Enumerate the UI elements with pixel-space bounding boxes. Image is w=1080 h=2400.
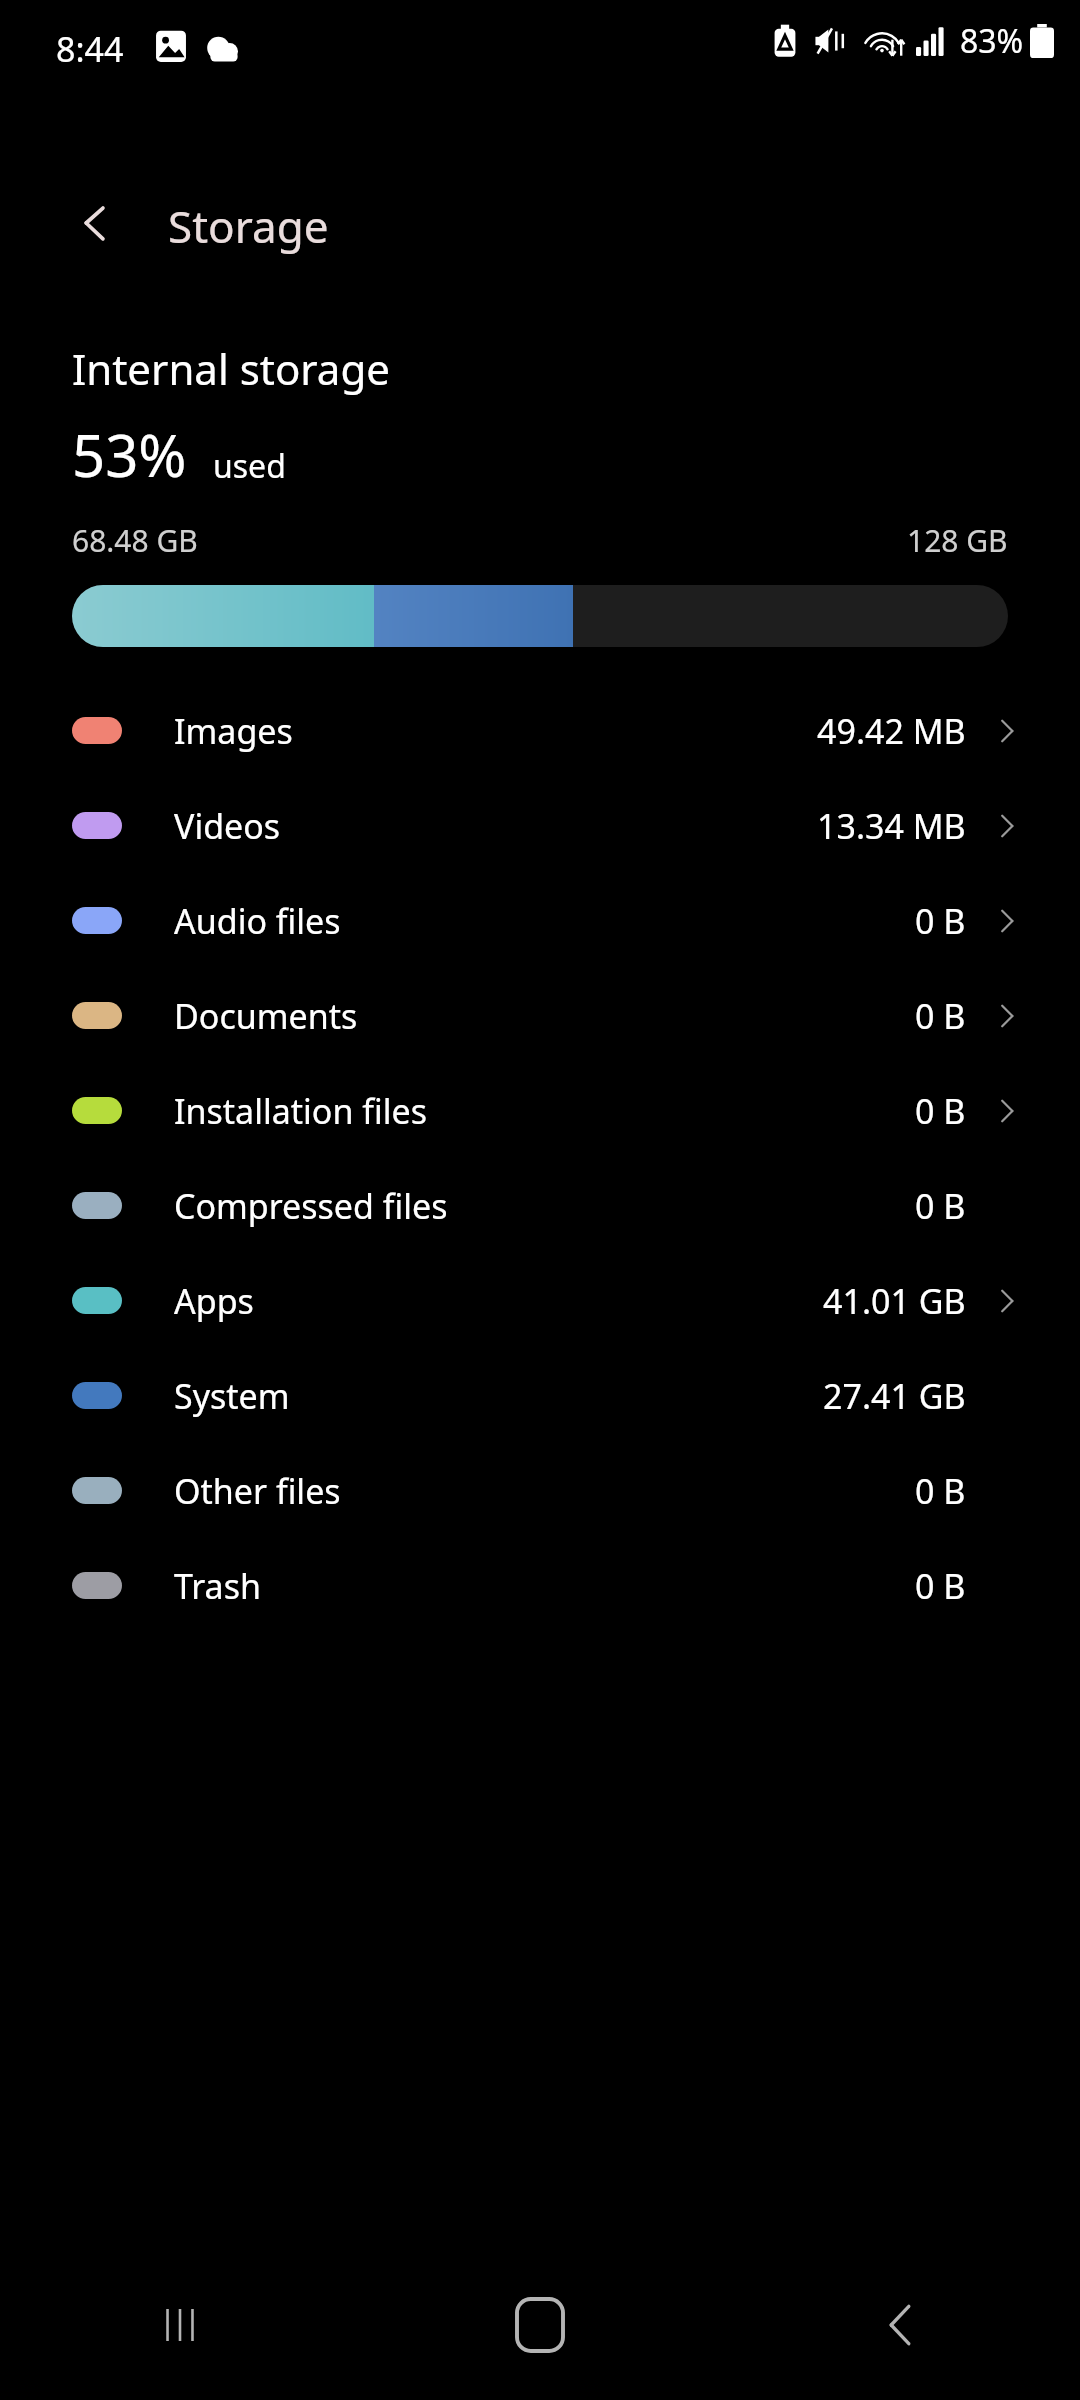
- staticText: 8:44: [56, 26, 124, 72]
- staticText: 128 GB: [907, 520, 1008, 561]
- button[interactable]: Installation files: [0, 1063, 1080, 1158]
- button[interactable]: Documents: [0, 968, 1080, 1063]
- button[interactable]: Trash: [0, 1538, 1080, 1633]
- staticText: Storage: [168, 196, 329, 256]
- button[interactable]: Back: [50, 178, 140, 268]
- button[interactable]: Videos: [0, 778, 1080, 873]
- button[interactable]: System: [0, 1348, 1080, 1443]
- staticText: Apps: [174, 1278, 254, 1324]
- staticText: Audio files: [174, 898, 341, 944]
- staticText: 27.41 GB: [823, 1373, 966, 1419]
- button[interactable]: Audio files: [0, 873, 1080, 968]
- staticText: 13.34 MB: [817, 803, 966, 849]
- staticText: Compressed files: [174, 1183, 448, 1229]
- staticText: 49.42 MB: [817, 708, 966, 754]
- staticText: Documents: [174, 993, 358, 1039]
- staticText: Installation files: [174, 1088, 427, 1134]
- staticText: System: [174, 1373, 290, 1419]
- staticText: 0 B: [915, 1563, 966, 1609]
- staticText: 68.48 GB: [72, 520, 198, 561]
- button[interactable]: Recents: [0, 2250, 360, 2400]
- staticText: 53%: [72, 415, 187, 494]
- button[interactable]: Home: [360, 2250, 720, 2400]
- button[interactable]: Back: [720, 2250, 1080, 2400]
- staticText: Videos: [174, 803, 281, 849]
- button[interactable]: Apps: [0, 1253, 1080, 1348]
- staticText: 0 B: [915, 1088, 966, 1134]
- staticText: 0 B: [915, 898, 966, 944]
- staticText: 0 B: [915, 1183, 966, 1229]
- staticText: 0 B: [915, 993, 966, 1039]
- staticText: 83%: [960, 19, 1024, 63]
- button[interactable]: Other files: [0, 1443, 1080, 1538]
- button[interactable]: Compressed files: [0, 1158, 1080, 1253]
- staticText: Internal storage: [72, 340, 390, 397]
- staticText: 41.01 GB: [823, 1278, 966, 1324]
- staticText: 0 B: [915, 1468, 966, 1514]
- staticText: Images: [174, 708, 293, 754]
- staticText: Other files: [174, 1468, 341, 1514]
- staticText: used: [213, 444, 286, 488]
- button[interactable]: Images: [0, 683, 1080, 778]
- staticText: Trash: [174, 1563, 261, 1609]
